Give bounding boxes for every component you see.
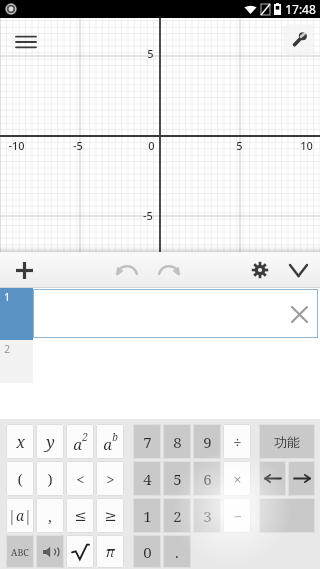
staticText: ≤ <box>74 507 87 524</box>
button[interactable]: y <box>36 424 64 459</box>
staticText: . <box>175 542 179 562</box>
staticText: 功能 <box>274 434 300 450</box>
button[interactable]: ( <box>6 461 34 496</box>
button[interactable]: 1 <box>133 498 161 533</box>
staticText: × <box>233 469 242 489</box>
button[interactable]: x <box>6 424 34 459</box>
staticText: , <box>48 506 52 526</box>
button[interactable]: a <box>96 424 124 459</box>
staticText: b <box>112 430 118 444</box>
staticText: a <box>103 434 112 454</box>
staticText: 7 <box>143 432 152 452</box>
staticText: 17:48 <box>285 1 316 17</box>
staticText: 1 <box>143 506 152 526</box>
button[interactable]: 9 <box>193 424 221 459</box>
button[interactable]: 6 <box>193 461 221 496</box>
button[interactable]: a <box>66 424 94 459</box>
button[interactable]: Menu <box>10 26 42 58</box>
staticText: 2 <box>82 430 88 444</box>
staticText: 9 <box>203 432 212 452</box>
button[interactable]: 2 <box>163 498 191 533</box>
button[interactable]: × <box>223 461 251 496</box>
button[interactable]: 功能 <box>259 424 315 459</box>
button[interactable]: 7 <box>133 424 161 459</box>
button[interactable]: Clear expression <box>286 301 312 327</box>
button[interactable]: Sound <box>36 535 64 568</box>
button[interactable]: Redo <box>152 253 186 287</box>
button[interactable]: |a| <box>6 498 34 533</box>
staticText: − <box>233 506 242 526</box>
staticText: < <box>76 469 85 489</box>
staticText: 1 <box>4 290 10 304</box>
button[interactable]: 2 <box>0 340 320 383</box>
button[interactable]: < <box>66 461 94 496</box>
button[interactable]: − <box>223 498 251 533</box>
button[interactable]: 4 <box>133 461 161 496</box>
staticText: a <box>73 434 82 454</box>
button[interactable]: Move left <box>259 461 286 496</box>
staticText: 0 <box>143 542 152 562</box>
button[interactable]: Move right <box>288 461 315 496</box>
staticText: y <box>46 431 55 453</box>
button[interactable]: ≤ <box>66 498 94 533</box>
button[interactable]: ≥ <box>96 498 124 533</box>
button[interactable]: 5 <box>163 461 191 496</box>
staticText: 5 <box>236 138 243 153</box>
staticText: ABC <box>11 546 29 558</box>
staticText: 4 <box>143 469 152 489</box>
staticText: x <box>16 431 25 453</box>
button[interactable]: > <box>96 461 124 496</box>
staticText: π <box>105 542 115 561</box>
staticText: 2 <box>4 342 10 356</box>
staticText: -5 <box>73 138 83 153</box>
button[interactable]: Square root <box>66 535 94 568</box>
staticText: -5 <box>143 208 153 223</box>
button[interactable]: π <box>96 535 124 568</box>
button[interactable]: ) <box>36 461 64 496</box>
button[interactable]: Collapse keypad <box>282 254 314 286</box>
button[interactable]: 0 <box>133 535 161 568</box>
button[interactable]: 8 <box>163 424 191 459</box>
staticText: 6 <box>203 469 212 489</box>
staticText: -10 <box>8 138 25 153</box>
staticText: 2 <box>173 506 182 526</box>
button[interactable]: ABC <box>6 535 34 568</box>
staticText: > <box>106 469 115 489</box>
button[interactable]: . <box>163 535 191 568</box>
staticText: ÷ <box>233 432 242 452</box>
button[interactable]: Graph settings <box>283 24 314 55</box>
staticText: ≥ <box>104 507 117 524</box>
button[interactable] <box>259 498 315 533</box>
button[interactable]: ÷ <box>223 424 251 459</box>
button[interactable]: , <box>36 498 64 533</box>
button[interactable]: 3 <box>193 498 221 533</box>
staticText: 5 <box>147 46 154 61</box>
staticText: 10 <box>300 138 313 153</box>
button[interactable]: Add expression <box>8 254 40 286</box>
staticText: 5 <box>173 469 182 489</box>
staticText: 0 <box>148 138 155 153</box>
staticText: |a| <box>8 506 32 525</box>
staticText: ( <box>17 469 23 489</box>
staticText: 8 <box>173 432 182 452</box>
button[interactable]: 1 <box>0 288 320 340</box>
staticText: ) <box>47 469 53 489</box>
staticText: 3 <box>203 506 212 526</box>
button[interactable]: Settings <box>244 254 276 286</box>
button[interactable]: Undo <box>110 253 144 287</box>
